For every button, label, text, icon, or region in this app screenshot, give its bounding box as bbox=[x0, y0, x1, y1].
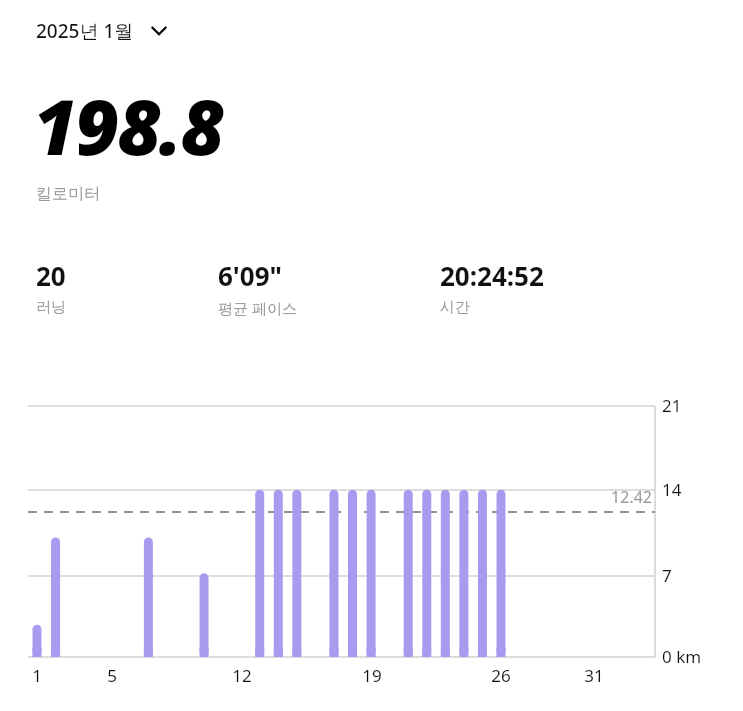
other: Change month bbox=[148, 20, 170, 42]
staticText: 12.42 bbox=[540, 486, 652, 508]
staticText: 6'09" bbox=[218, 258, 282, 293]
staticText: 러닝 bbox=[36, 298, 66, 317]
staticText: 5 bbox=[82, 664, 142, 687]
staticText: 0 km bbox=[662, 645, 702, 668]
staticText: 26 bbox=[471, 664, 531, 687]
staticText: 20 bbox=[36, 258, 66, 293]
staticText: 31 bbox=[564, 664, 624, 687]
staticText: 시간 bbox=[440, 298, 470, 317]
staticText: 1 bbox=[7, 664, 67, 687]
staticText: 7 bbox=[662, 564, 672, 587]
staticText: 21 bbox=[662, 394, 682, 417]
button[interactable]: 2025년 1월 bbox=[36, 18, 176, 44]
staticText: 2025년 1월 bbox=[36, 18, 134, 44]
staticText: 12 bbox=[212, 664, 272, 687]
staticText: 평균 페이스 bbox=[218, 298, 297, 318]
staticText: 198.8 bbox=[33, 74, 223, 178]
staticText: 14 bbox=[662, 478, 682, 501]
staticText: 킬로미터 bbox=[36, 184, 100, 204]
staticText: 20:24:52 bbox=[440, 258, 544, 293]
staticText: 19 bbox=[342, 664, 402, 687]
